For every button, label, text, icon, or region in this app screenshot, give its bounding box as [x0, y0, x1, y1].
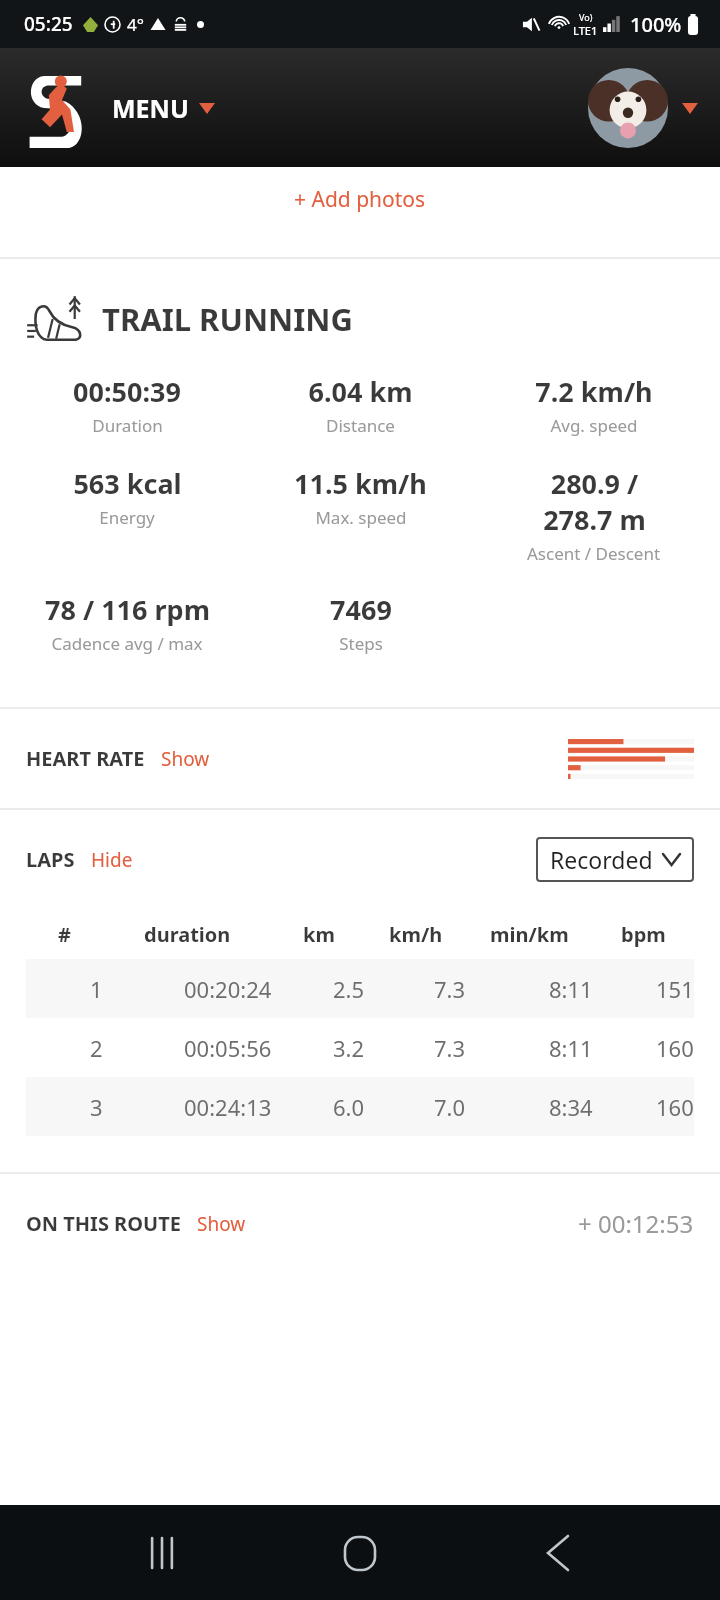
- staticText: 78 / 116 rpm: [45, 591, 210, 628]
- staticText: MENU: [112, 91, 189, 125]
- staticText: Recorded: [550, 844, 653, 875]
- staticText: 7.3: [434, 974, 466, 1004]
- staticText: 7.0: [434, 1092, 466, 1122]
- staticText: bpm: [621, 921, 666, 948]
- staticText: duration: [144, 921, 231, 948]
- staticText: Show: [161, 746, 210, 772]
- button[interactable]: Recent apps: [126, 1517, 198, 1589]
- button[interactable]: Home: [324, 1517, 396, 1589]
- button[interactable]: 1: [26, 959, 694, 1018]
- staticText: Ascent / Descent: [527, 542, 661, 565]
- other: Heart rate chart: [568, 739, 694, 779]
- staticText: Max. speed: [315, 506, 407, 529]
- staticText: 280.9 / 278.7 m: [543, 465, 646, 538]
- staticText: 8:34: [549, 1092, 593, 1122]
- button[interactable]: + Add photos: [0, 167, 720, 257]
- staticText: 2.5: [333, 974, 365, 1004]
- staticText: Distance: [326, 414, 395, 437]
- staticText: 160: [656, 1092, 694, 1122]
- staticText: Energy: [99, 506, 155, 529]
- staticText: Vo): [579, 11, 593, 23]
- staticText: TRAIL RUNNING: [102, 298, 354, 340]
- staticText: 00:20:24: [184, 974, 272, 1004]
- staticText: 8:11: [549, 974, 593, 1004]
- button[interactable]: Show: [195, 1205, 248, 1243]
- staticText: 3: [90, 1092, 103, 1122]
- staticText: 151: [656, 974, 694, 1004]
- staticText: 6.04 km: [308, 373, 413, 410]
- staticText: 00:24:13: [184, 1092, 272, 1122]
- staticText: 7.2 km/h: [535, 373, 653, 410]
- staticText: 4°: [127, 13, 144, 36]
- staticText: 7.3: [434, 1033, 466, 1063]
- staticText: Hide: [91, 847, 133, 873]
- button[interactable]: Back: [522, 1517, 594, 1589]
- button[interactable]: 3: [26, 1077, 694, 1136]
- button[interactable]: 2: [26, 1018, 694, 1077]
- staticText: 2: [90, 1033, 103, 1063]
- staticText: LAPS: [26, 846, 75, 873]
- staticText: Duration: [92, 414, 163, 437]
- staticText: min/km: [490, 921, 569, 948]
- staticText: 6.0: [333, 1092, 365, 1122]
- button[interactable]: Show: [159, 740, 212, 778]
- staticText: 8:11: [549, 1033, 593, 1063]
- staticText: 3.2: [333, 1033, 365, 1063]
- staticText: + 00:12:53: [578, 1207, 694, 1240]
- staticText: LTE1: [573, 23, 598, 38]
- staticText: km/h: [389, 921, 443, 948]
- staticText: 160: [656, 1033, 694, 1063]
- staticText: Cadence avg / max: [51, 632, 203, 655]
- staticText: 05:25: [24, 11, 73, 37]
- button[interactable]: MENU: [112, 81, 215, 135]
- button[interactable]: Profile: [588, 68, 698, 148]
- staticText: Avg. speed: [550, 414, 638, 437]
- staticText: 00:05:56: [184, 1033, 272, 1063]
- button[interactable]: Sports Tracker logo: [26, 68, 86, 148]
- staticText: Steps: [339, 632, 383, 655]
- button[interactable]: Recorded: [536, 837, 694, 882]
- button[interactable]: Hide: [89, 841, 135, 879]
- staticText: 7469: [330, 591, 392, 628]
- staticText: #: [58, 921, 71, 948]
- staticText: 00:50:39: [73, 373, 181, 410]
- staticText: 11.5 km/h: [294, 465, 427, 502]
- staticText: 100%: [630, 11, 682, 38]
- staticText: km: [303, 921, 335, 948]
- staticText: ON THIS ROUTE: [26, 1210, 181, 1237]
- staticText: 563 kcal: [73, 465, 182, 502]
- staticText: Show: [197, 1211, 246, 1237]
- staticText: HEART RATE: [26, 745, 145, 772]
- staticText: 1: [90, 974, 103, 1004]
- staticText: + Add photos: [294, 185, 426, 214]
